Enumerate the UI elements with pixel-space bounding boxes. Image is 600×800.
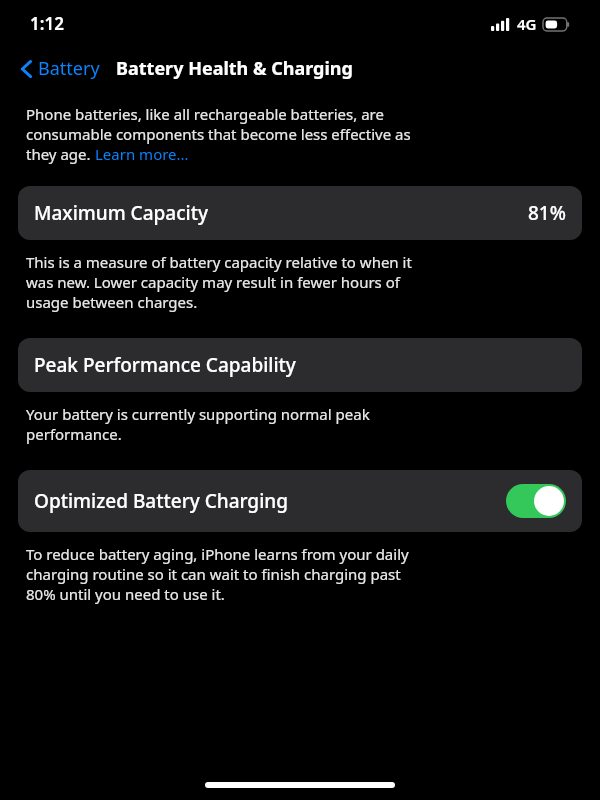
staticText: usage between charges. (26, 292, 198, 312)
staticText: Phone batteries, like all rechargeable b… (26, 104, 384, 124)
button[interactable]: Optimized Battery Charging (18, 470, 582, 532)
button[interactable]: Maximum Capacity (18, 186, 582, 240)
staticText: Learn more... (95, 144, 189, 164)
button[interactable]: Peak Performance Capability (18, 338, 582, 392)
staticText: Battery Health & Charging (116, 56, 353, 81)
staticText: Peak Performance Capability (34, 352, 296, 378)
staticText: consumable components that become less e… (26, 124, 411, 144)
staticText: 1:12 (30, 12, 64, 35)
staticText: Battery (38, 56, 100, 81)
other: Back (20, 59, 33, 79)
button[interactable]: Optimized Battery Charging toggle, on (506, 484, 566, 518)
staticText: 81% (528, 200, 566, 226)
button[interactable]: Learn more... (95, 144, 189, 164)
staticText: performance. (26, 424, 122, 444)
staticText: charging routine so it can wait to finis… (26, 564, 401, 584)
staticText: Maximum Capacity (34, 200, 208, 226)
button[interactable]: Back (16, 52, 104, 85)
staticText: 4G (517, 14, 537, 34)
staticText: was new. Lower capacity may result in fe… (26, 272, 400, 292)
staticText: Optimized Battery Charging (34, 488, 288, 514)
staticText: This is a measure of battery capacity re… (26, 252, 412, 272)
staticText: 80% until you need to use it. (26, 584, 225, 604)
staticText: To reduce battery aging, iPhone learns f… (26, 544, 409, 564)
staticText: they age. (26, 144, 95, 164)
staticText: Your battery is currently supporting nor… (26, 404, 370, 424)
